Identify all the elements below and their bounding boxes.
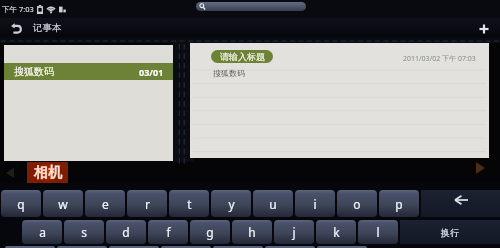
staticText: 相机	[34, 164, 62, 182]
staticText: h	[248, 224, 256, 240]
button[interactable]: r	[127, 190, 167, 217]
button[interactable]: o	[337, 190, 377, 217]
staticText: g	[206, 224, 214, 240]
button[interactable]: k	[316, 220, 356, 244]
staticText: i	[313, 196, 317, 212]
button[interactable]: u	[253, 190, 293, 217]
button[interactable]: Search	[196, 2, 306, 11]
button[interactable]: Back	[4, 18, 28, 39]
button[interactable]: g	[190, 220, 230, 244]
staticText: t	[187, 196, 192, 212]
staticText: r	[145, 196, 150, 212]
button[interactable]: d	[106, 220, 146, 244]
staticText: k	[333, 224, 340, 240]
button[interactable]	[265, 246, 315, 248]
staticText: 03/01	[139, 66, 164, 78]
button[interactable]: 搜狐数码	[4, 63, 173, 80]
button[interactable]: 搜狐数码	[4, 45, 173, 161]
button[interactable]: e	[85, 190, 125, 217]
staticText: j	[292, 224, 296, 240]
button[interactable]: Add note	[468, 18, 500, 39]
staticText: 2011/03/02 下午 07:03	[403, 54, 476, 64]
button[interactable]: 换行	[400, 220, 500, 244]
staticText: 搜狐数码	[14, 65, 54, 78]
staticText: d	[122, 224, 130, 240]
staticText: o	[353, 196, 361, 212]
button[interactable]: j	[274, 220, 314, 244]
button[interactable]: i	[295, 190, 335, 217]
button[interactable]: p	[379, 190, 419, 217]
staticText: e	[102, 196, 109, 212]
button[interactable]: w	[43, 190, 83, 217]
staticText: 下午 7:03	[2, 4, 34, 14]
staticText: 请输入标题	[220, 51, 265, 62]
button[interactable]: 请输入标题	[211, 50, 273, 63]
staticText: q	[17, 196, 25, 212]
button[interactable]	[109, 246, 159, 248]
button[interactable]: t	[169, 190, 209, 217]
staticText: a	[39, 224, 46, 240]
staticText: w	[58, 196, 68, 212]
button[interactable]: y	[211, 190, 251, 217]
staticText: p	[395, 196, 403, 212]
button[interactable]: h	[232, 220, 272, 244]
button[interactable]	[161, 246, 211, 248]
staticText: s	[81, 224, 87, 240]
button[interactable]: f	[148, 220, 188, 244]
button[interactable]	[213, 246, 263, 248]
button[interactable]: a	[22, 220, 62, 244]
staticText: 记事本	[33, 22, 62, 34]
staticText: u	[269, 196, 277, 212]
staticText: y	[228, 196, 235, 212]
button[interactable]: s	[64, 220, 104, 244]
button[interactable]	[57, 246, 107, 248]
button[interactable]: q	[1, 190, 41, 217]
staticText: f	[166, 224, 171, 240]
staticText: l	[376, 224, 380, 240]
button[interactable]	[5, 246, 55, 248]
button[interactable]: Backspace	[421, 190, 500, 217]
button[interactable]: l	[358, 220, 398, 244]
staticText: 换行	[441, 227, 459, 238]
button[interactable]	[317, 246, 367, 248]
staticText: 搜狐数码	[213, 68, 245, 78]
